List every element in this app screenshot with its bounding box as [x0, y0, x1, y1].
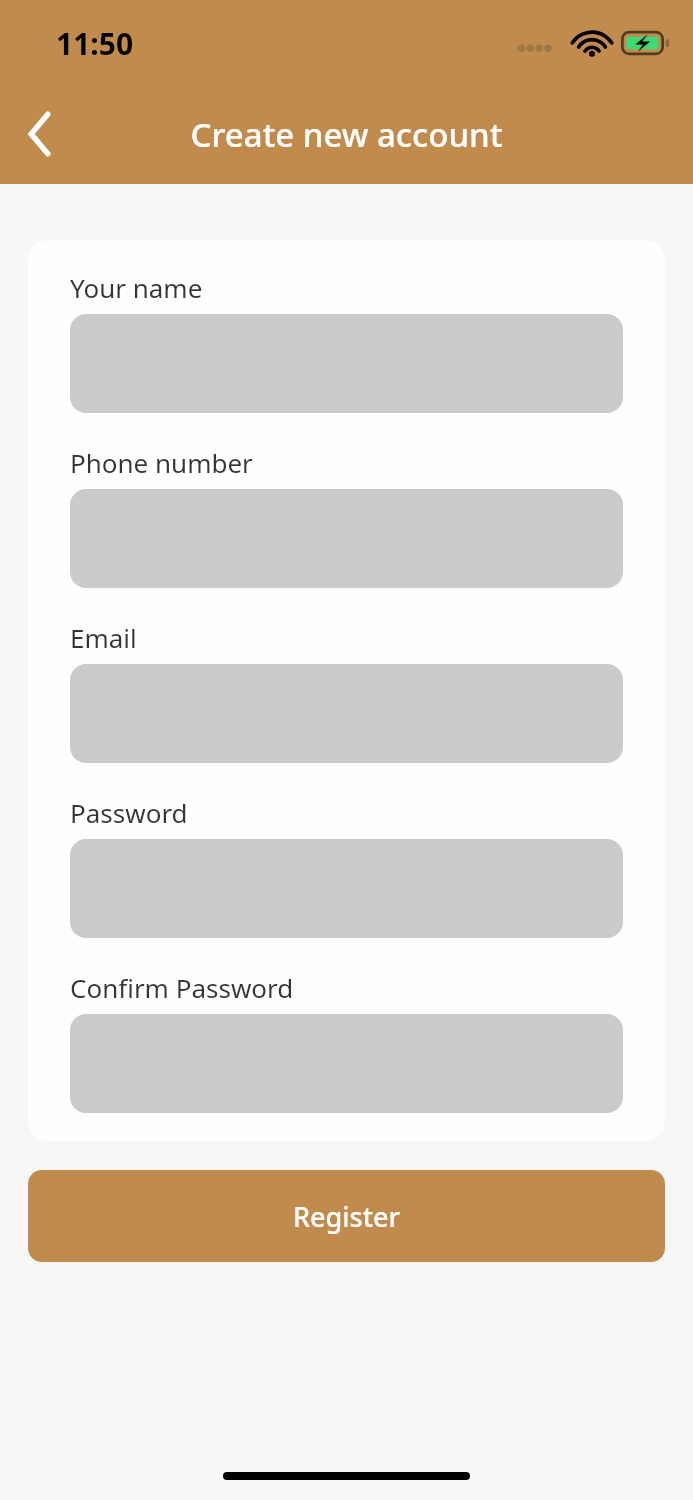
button[interactable]: Password: [70, 839, 623, 938]
staticText: Phone number: [70, 445, 253, 480]
staticText: Confirm Password: [70, 970, 294, 1005]
button[interactable]: Phone number: [70, 489, 623, 588]
button[interactable]: Register: [28, 1170, 665, 1262]
button[interactable]: Confirm Password: [70, 1014, 623, 1113]
staticText: Create new account: [0, 112, 693, 157]
button[interactable]: Back: [6, 100, 74, 168]
staticText: 11:50: [56, 23, 134, 64]
button[interactable]: Email: [70, 664, 623, 763]
button[interactable]: Your name: [70, 314, 623, 413]
staticText: Register: [293, 1198, 400, 1235]
staticText: Password: [70, 795, 188, 830]
staticText: Email: [70, 620, 137, 655]
staticText: Your name: [70, 270, 203, 305]
